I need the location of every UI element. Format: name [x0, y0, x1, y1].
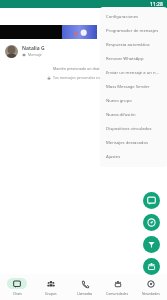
button[interactable]: Mass Message Sender: [100, 80, 167, 94]
staticText: Programador de mensajes: [106, 28, 159, 34]
staticText: Respuesta automática: [106, 42, 150, 48]
button[interactable]: Communities: [143, 258, 160, 275]
staticText: Renovar WhatsApp: [106, 56, 144, 62]
button[interactable]: Renovar WhatsApp: [100, 52, 167, 66]
staticText: Tus mensajes personales están cifrados: [53, 75, 120, 80]
button[interactable]: Chats: [0, 274, 34, 300]
button[interactable]: Status: [143, 214, 160, 231]
button[interactable]: Llamadas: [68, 274, 101, 300]
button[interactable]: Programador de mensajes: [100, 24, 167, 38]
button[interactable]: Nueva difusión: [100, 108, 167, 122]
button[interactable]: New chat: [143, 192, 160, 209]
button[interactable]: Comunidades: [101, 274, 134, 300]
button[interactable]: Mensajes destacados: [100, 136, 167, 150]
staticText: Mensajes destacados: [106, 140, 148, 146]
staticText: 11:28: [150, 1, 163, 8]
staticText: Mantén presionado un chat para ver: [53, 66, 115, 71]
staticText: Configuraciones: [106, 14, 139, 20]
staticText: Llamadas: [77, 291, 93, 296]
staticText: Mass Message Sender: [106, 84, 150, 90]
staticText: Mensaje: [28, 52, 42, 57]
button[interactable]: Configuraciones: [100, 10, 167, 24]
staticText: Ajustes: [106, 154, 121, 160]
staticText: Enviar un mensaje a un número: [106, 70, 161, 76]
staticText: Grupos: [45, 291, 57, 296]
button[interactable]: Nuevo grupo: [100, 94, 167, 108]
button[interactable]: Dispositivos vinculados: [100, 122, 167, 136]
button[interactable]: Respuesta automática: [100, 38, 167, 52]
staticText: Comunidades: [106, 291, 129, 296]
button[interactable]: Nick ABC: [0, 25, 167, 39]
button[interactable]: Novedades: [134, 274, 167, 300]
staticText: Nick ABC: [100, 27, 118, 32]
staticText: Dispositivos vinculados: [106, 126, 152, 132]
button[interactable]: Enviar un mensaje a un número: [100, 66, 167, 80]
staticText: Nuevo grupo: [106, 98, 132, 104]
staticText: mensaje Nick ABC y más: [100, 32, 141, 37]
staticText: Novedades: [142, 291, 160, 296]
staticText: Nueva difusión: [106, 112, 136, 118]
button[interactable]: Natalia G: [0, 42, 167, 60]
button[interactable]: Channels: [143, 236, 160, 253]
staticText: Natalia G: [22, 45, 45, 52]
button[interactable]: Grupos: [34, 274, 68, 300]
button[interactable]: Ajustes: [100, 150, 167, 164]
staticText: Chats: [13, 291, 22, 296]
